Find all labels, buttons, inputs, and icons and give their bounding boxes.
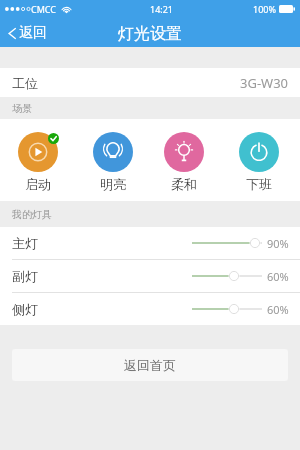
- button[interactable]: 工位: [0, 68, 300, 97]
- button[interactable]: 下班: [235, 132, 283, 192]
- button[interactable]: 明亮: [89, 132, 137, 192]
- staticText: 100%: [253, 3, 276, 15]
- staticText: 下班: [235, 176, 283, 192]
- staticText: 启动: [14, 176, 62, 192]
- staticText: 柔和: [160, 176, 208, 192]
- staticText: 返回: [19, 24, 47, 42]
- staticText: 主灯: [12, 235, 38, 251]
- button[interactable]: 主灯: [0, 227, 300, 259]
- staticText: 我的灯具: [12, 208, 52, 221]
- button[interactable]: 返回: [0, 20, 55, 46]
- button[interactable]: 侧灯: [0, 293, 300, 325]
- staticText: 明亮: [89, 176, 137, 192]
- staticText: 场景: [12, 102, 32, 115]
- staticText: 60%: [267, 269, 289, 284]
- button[interactable]: 副灯: [0, 260, 300, 292]
- staticText: 侧灯: [12, 301, 38, 317]
- button[interactable]: 启动: [14, 132, 62, 192]
- staticText: 工位: [12, 75, 38, 91]
- button[interactable]: 返回首页: [12, 349, 288, 381]
- staticText: 60%: [267, 302, 289, 317]
- staticText: 返回首页: [124, 357, 176, 373]
- staticText: 3G-W30: [240, 74, 289, 92]
- staticText: 灯光设置: [118, 24, 182, 44]
- staticText: 14:21: [150, 3, 174, 15]
- staticText: CMCC: [31, 3, 57, 15]
- staticText: 副灯: [12, 268, 38, 284]
- button[interactable]: 柔和: [160, 132, 208, 192]
- staticText: 90%: [267, 236, 289, 251]
